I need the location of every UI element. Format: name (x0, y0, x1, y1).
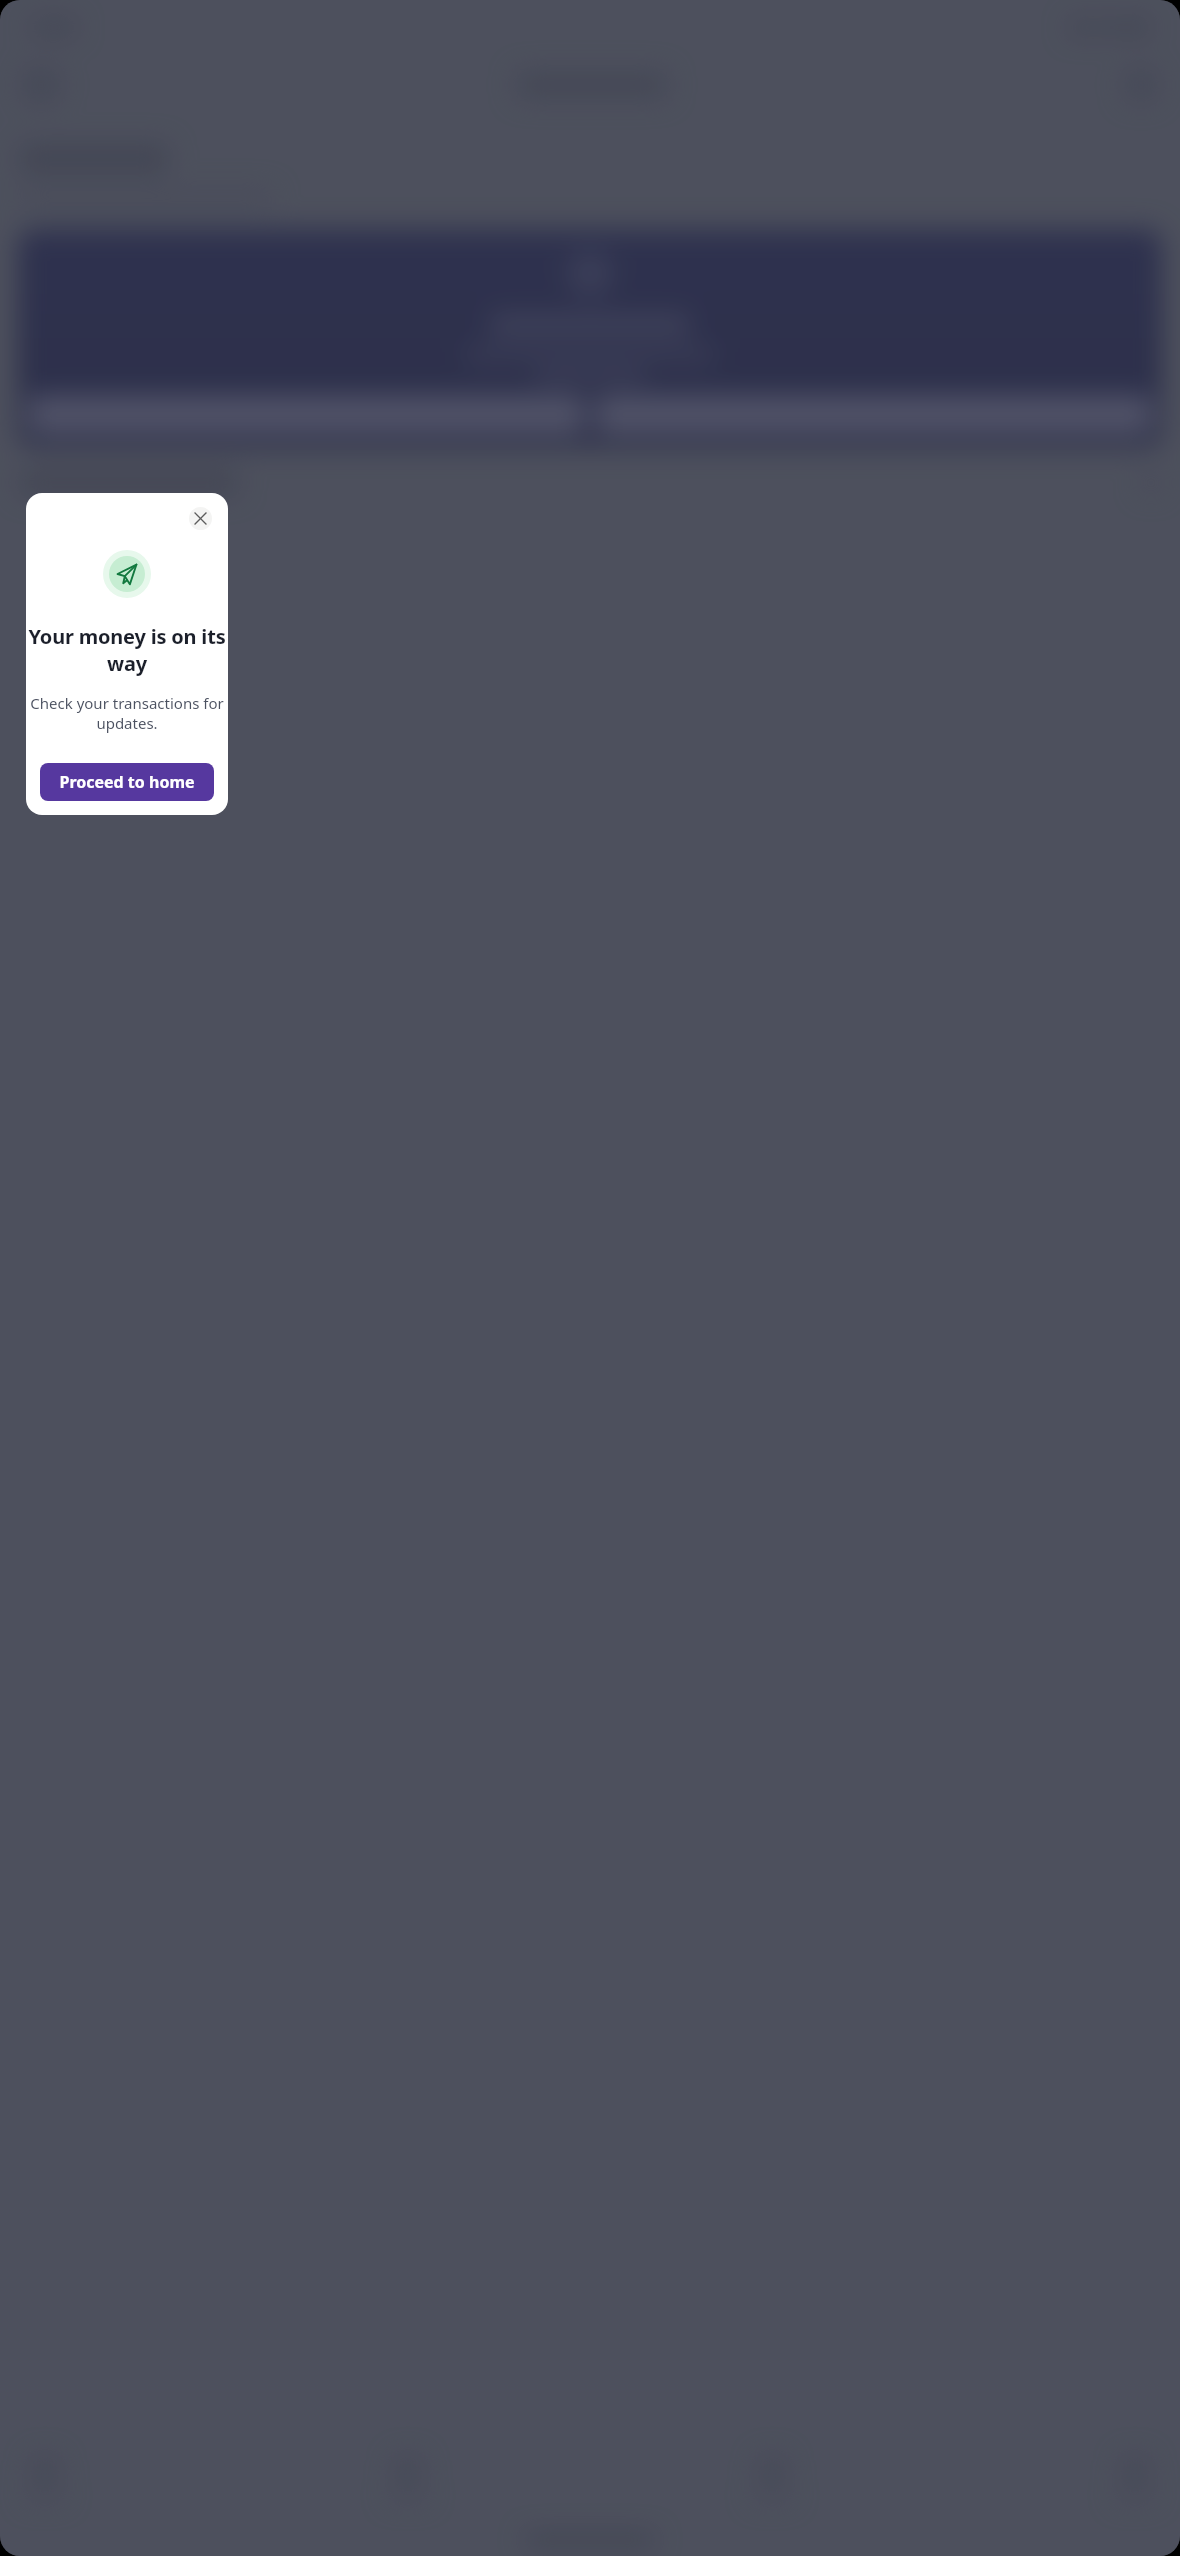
button[interactable]: Close (189, 507, 212, 530)
staticText: Check your transactions for updates. (26, 693, 228, 733)
staticText: Your money is on its way (26, 623, 228, 677)
staticText: Proceed to home (59, 771, 195, 793)
button[interactable]: Proceed to home (40, 763, 214, 801)
